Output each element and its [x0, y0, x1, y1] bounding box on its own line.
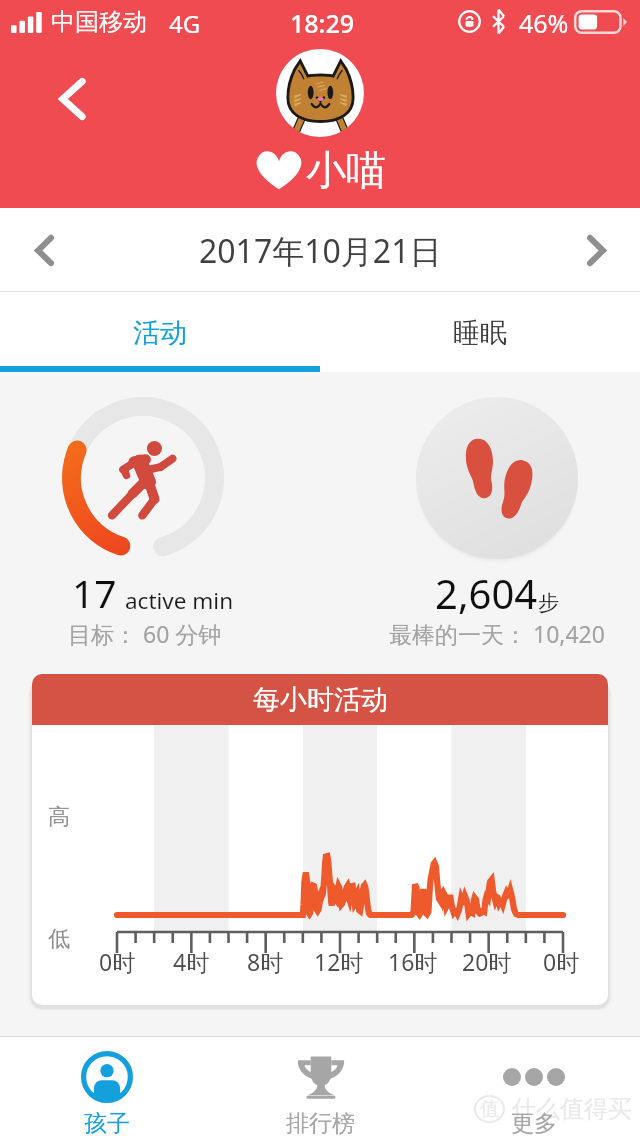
- button[interactable]: 孩子: [0, 1037, 214, 1136]
- staticText: 每小时活动: [253, 683, 388, 717]
- staticText: active min: [125, 585, 234, 616]
- staticText: 0时: [99, 946, 136, 977]
- staticText: 20时: [462, 946, 512, 977]
- staticText: 0时: [543, 946, 580, 977]
- staticText: 18:29: [290, 6, 355, 40]
- button[interactable]: 更多: [427, 1037, 640, 1136]
- button[interactable]: Next day: [566, 220, 626, 280]
- staticText: 高: [48, 803, 70, 831]
- staticText: 步: [538, 590, 559, 616]
- staticText: 排行榜: [286, 1109, 355, 1136]
- staticText: 值: [480, 1097, 499, 1121]
- staticText: 目标： 60 分钟: [68, 618, 222, 649]
- staticText: 中国移动: [51, 7, 147, 37]
- button[interactable]: 排行榜: [214, 1037, 427, 1136]
- staticText: 更多: [511, 1109, 557, 1136]
- staticText: 2017年10月21日: [199, 229, 442, 273]
- staticText: 16时: [388, 946, 438, 977]
- staticText: 最棒的一天： 10,420: [389, 618, 605, 649]
- staticText: 46%: [519, 6, 569, 40]
- button[interactable]: Back: [44, 71, 100, 127]
- button[interactable]: Previous day: [14, 220, 74, 280]
- staticText: 小喵: [306, 145, 386, 195]
- staticText: 活动: [133, 316, 187, 350]
- staticText: 低: [48, 925, 70, 953]
- staticText: 什么值得买: [512, 1094, 632, 1124]
- staticText: 4G: [169, 7, 201, 40]
- staticText: 孩子: [84, 1109, 130, 1136]
- button[interactable]: 活动: [0, 296, 320, 370]
- staticText: 4时: [173, 946, 210, 977]
- staticText: 2,604: [435, 566, 538, 620]
- staticText: 12时: [314, 946, 364, 977]
- staticText: 17: [72, 566, 117, 619]
- staticText: 睡眠: [453, 316, 507, 350]
- button[interactable]: Profile avatar: [276, 49, 364, 137]
- button[interactable]: 睡眠: [320, 296, 640, 370]
- staticText: 8时: [247, 946, 284, 977]
